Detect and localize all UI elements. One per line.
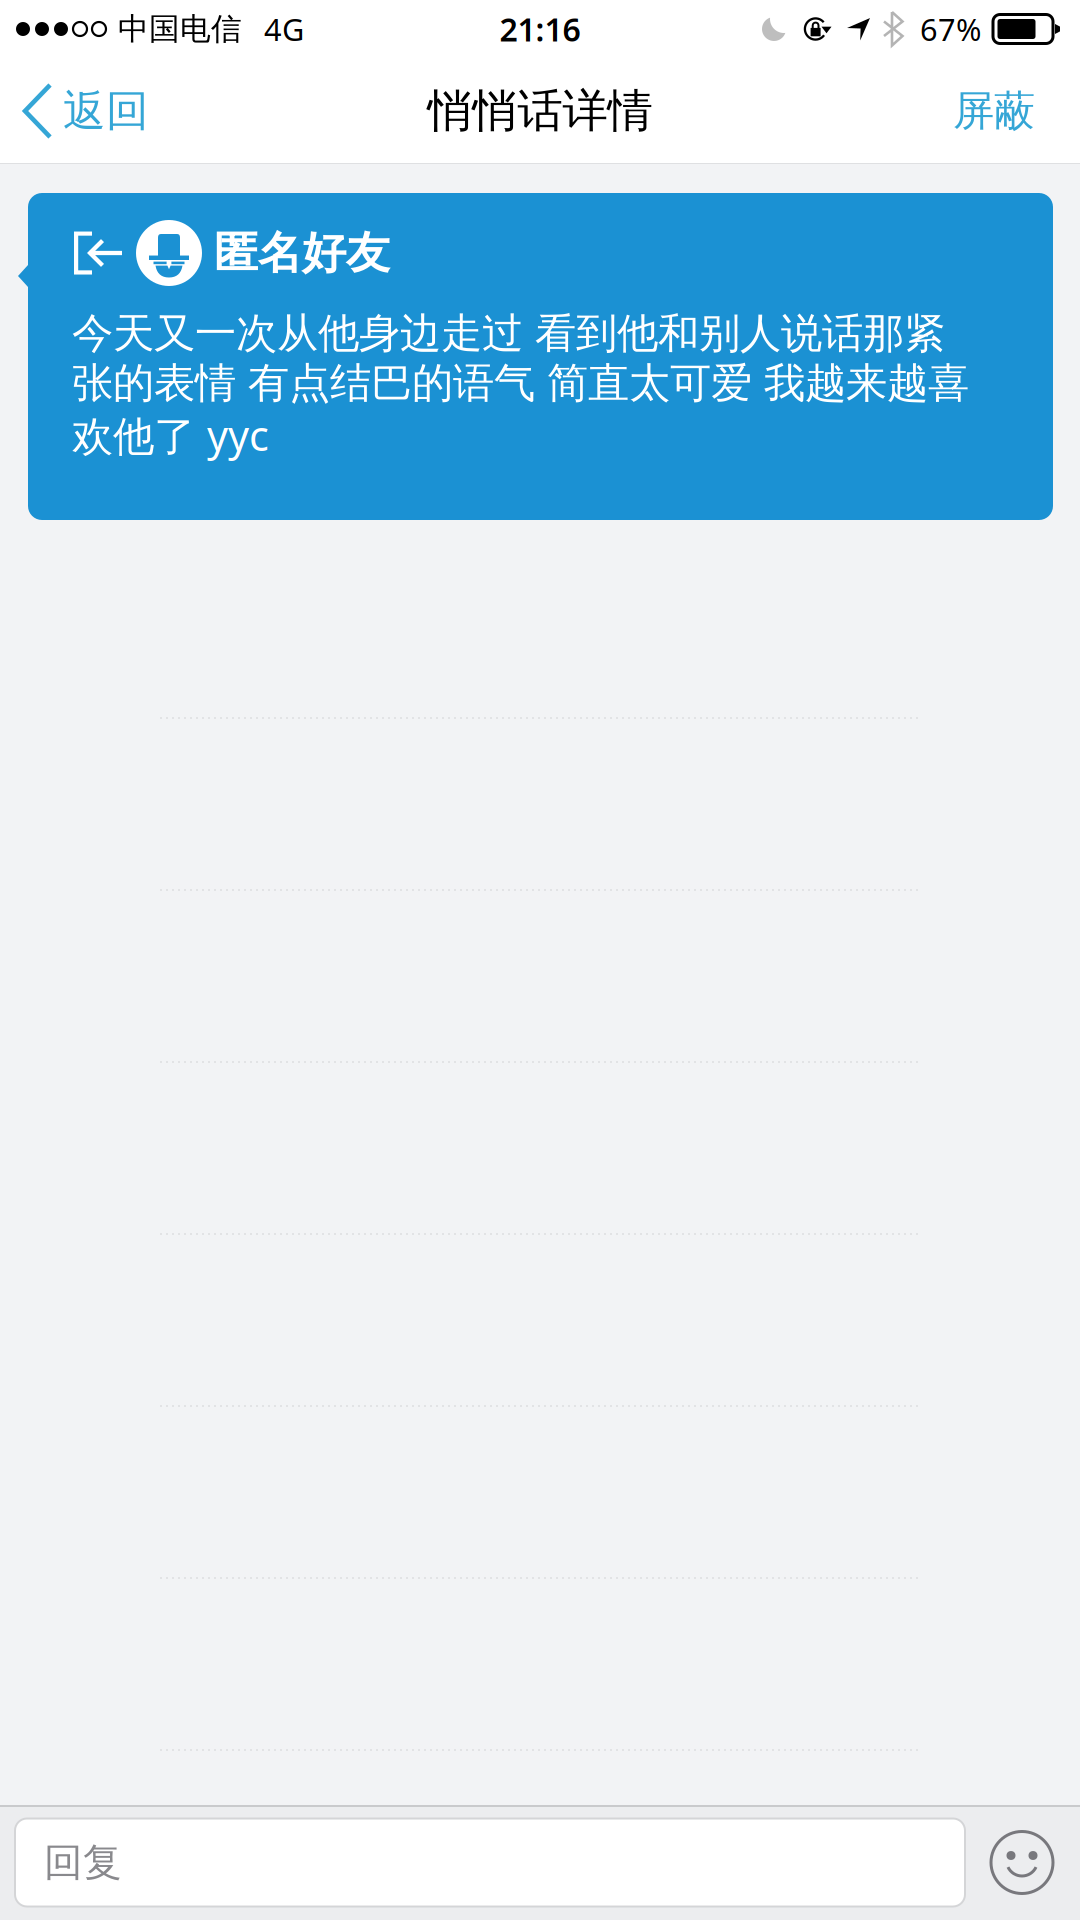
staticText: 21:16 [499,8,580,50]
staticText: 屏蔽 [953,86,1035,136]
staticText: 中国电信 [118,10,242,48]
staticText: 返回 [63,85,149,137]
button[interactable]: 返回 [0,70,169,151]
staticText: 今天又一次从他身边走过 看到他和别人说话那紧张的表情 有点结巴的语气 简直太可爱… [72,308,969,462]
staticText: 67% [920,9,981,49]
button[interactable]: Emoji [975,1820,1069,1904]
staticText: 匿名好友 [214,226,390,280]
button[interactable]: 屏蔽 [929,66,1080,156]
button[interactable]: 回复 [15,1818,965,1906]
staticText: 回复 [44,1839,122,1886]
staticText: 4G [264,9,304,49]
staticText: 悄悄话详情 [427,83,652,139]
